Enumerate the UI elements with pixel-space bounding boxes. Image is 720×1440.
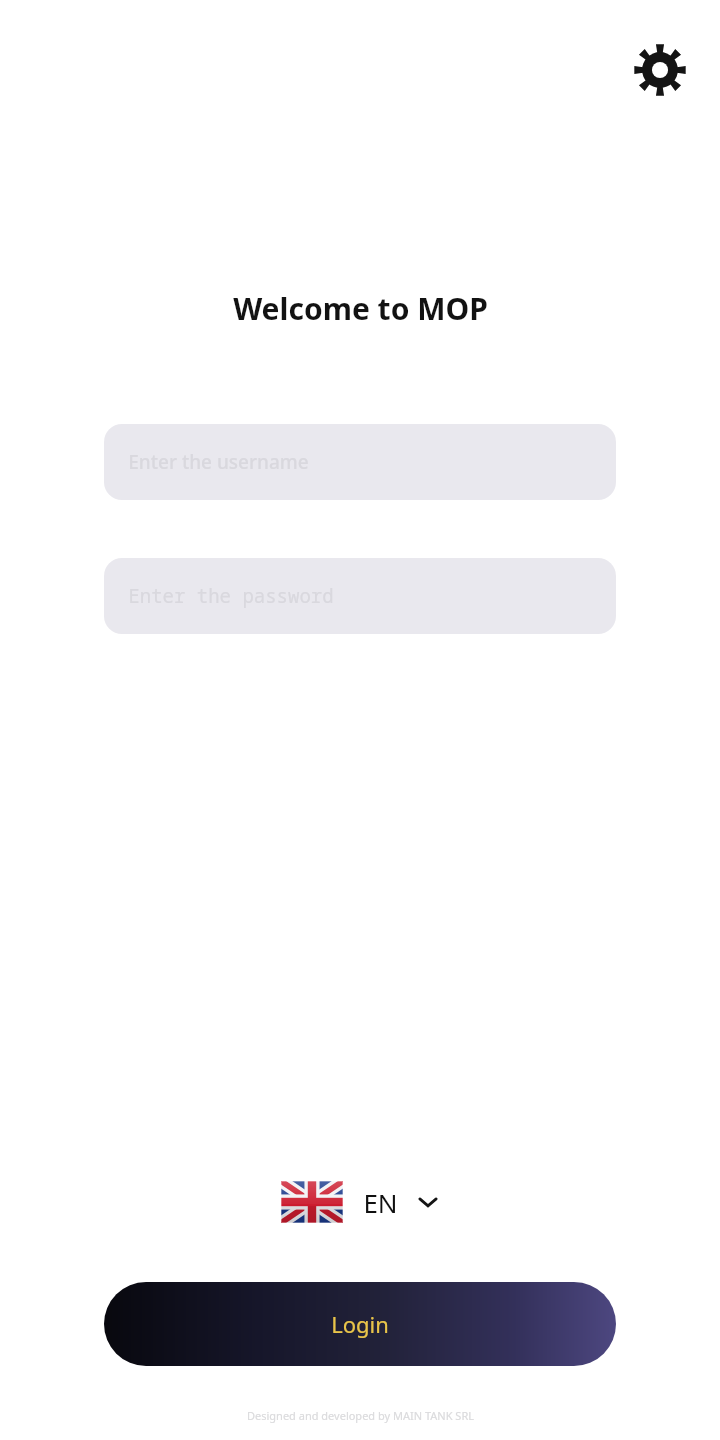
button[interactable]: EN bbox=[281, 1181, 440, 1223]
staticText: Welcome to MOP bbox=[233, 288, 488, 329]
staticText: Enter the username bbox=[128, 449, 309, 475]
staticText: Enter the password bbox=[128, 583, 334, 609]
staticText: Designed and developed by MAIN TANK SRL bbox=[247, 1408, 474, 1423]
staticText: EN bbox=[363, 1185, 398, 1220]
staticText: Login bbox=[331, 1309, 389, 1339]
button[interactable]: Login bbox=[104, 1282, 616, 1366]
button[interactable]: Settings bbox=[612, 22, 708, 118]
